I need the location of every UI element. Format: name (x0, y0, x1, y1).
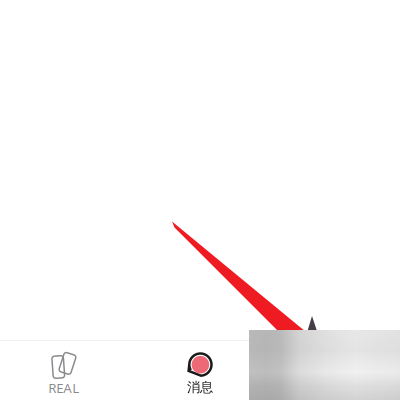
button[interactable]: 消息 (133, 341, 267, 400)
button[interactable]: REAL (0, 341, 133, 400)
staticText: 我 (327, 379, 340, 395)
staticText: REAL (48, 379, 79, 397)
button[interactable]: 我 (267, 341, 400, 400)
staticText: 消息 (187, 379, 213, 395)
